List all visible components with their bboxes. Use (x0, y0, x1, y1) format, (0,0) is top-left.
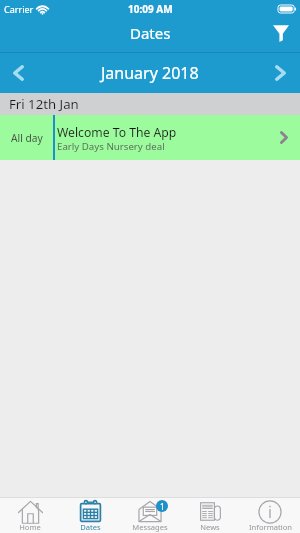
button[interactable]: All day (0, 115, 300, 160)
button[interactable]: 1 (120, 498, 180, 533)
staticText: Information (249, 522, 292, 532)
button[interactable]: Information (240, 498, 300, 533)
button[interactable]: Previous month (0, 53, 37, 93)
staticText: Home (19, 522, 41, 532)
staticText: 10:09 AM (128, 2, 173, 16)
staticText: Fri 12th Jan (9, 95, 79, 113)
staticText: Dates (130, 23, 171, 43)
button[interactable]: Next month (260, 53, 300, 93)
staticText: News (200, 522, 220, 532)
staticText: Welcome To The App (57, 124, 177, 141)
button[interactable]: Home (0, 498, 60, 533)
staticText: All day (11, 131, 43, 145)
staticText: January 2018 (101, 62, 199, 84)
button[interactable]: Dates (60, 498, 120, 533)
staticText: Dates (80, 522, 101, 532)
staticText: Early Days Nursery deal (57, 140, 165, 153)
button[interactable]: Filter (262, 20, 300, 53)
staticText: Carrier (4, 3, 34, 15)
staticText: Messages (132, 522, 168, 532)
staticText: 1 (160, 501, 165, 512)
button[interactable]: News (180, 498, 240, 533)
